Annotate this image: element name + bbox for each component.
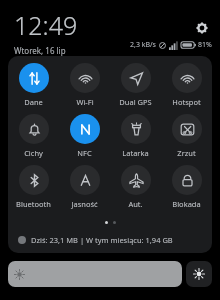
button[interactable]: Settings <box>192 18 212 38</box>
button[interactable]: Latarka <box>110 114 161 158</box>
staticText: Dane <box>24 97 43 107</box>
staticText: Dual GPS <box>119 97 152 107</box>
staticText: Jasność <box>71 199 98 209</box>
button[interactable]: NFC <box>59 114 110 158</box>
button[interactable]: Zrzut <box>161 114 212 158</box>
staticText: 12:49 <box>14 8 78 42</box>
staticText: NFC <box>77 148 92 158</box>
staticText: Blokada <box>172 199 201 209</box>
button[interactable]: Blokada <box>161 165 212 209</box>
staticText: Aut. samolotowy <box>110 199 161 209</box>
button[interactable]: Hotspot <box>161 63 212 107</box>
staticText: Cichy <box>24 148 43 158</box>
button[interactable]: Jasność <box>59 165 110 209</box>
button[interactable]: Brightness <box>8 261 182 287</box>
staticText: Wtorek, 16 lip <box>14 45 66 56</box>
button[interactable]: Aut. samolotowy <box>110 165 161 209</box>
button[interactable]: Cichy <box>8 114 59 158</box>
staticText: 2,3 kB/s <box>130 40 156 50</box>
staticText: 81% <box>198 40 212 50</box>
staticText: Hotspot <box>172 97 201 107</box>
button[interactable]: Auto brightness <box>186 261 212 287</box>
staticText: Dziś: 23,1 MB | W tym miesiącu: 1,94 GB <box>31 235 173 245</box>
staticText: Wi-Fi <box>76 97 94 107</box>
button[interactable]: Wi-Fi <box>59 63 110 107</box>
staticText: Latarka <box>122 148 149 158</box>
button[interactable]: Bluetooth <box>8 165 59 209</box>
button[interactable]: Dual GPS <box>110 63 161 107</box>
staticText: Zrzut <box>177 148 196 158</box>
button[interactable]: Dane <box>8 63 59 107</box>
button[interactable]: Dziś: 23,1 MB | W tym miesiącu: 1,94 GB <box>8 230 212 250</box>
staticText: Bluetooth <box>16 199 51 209</box>
